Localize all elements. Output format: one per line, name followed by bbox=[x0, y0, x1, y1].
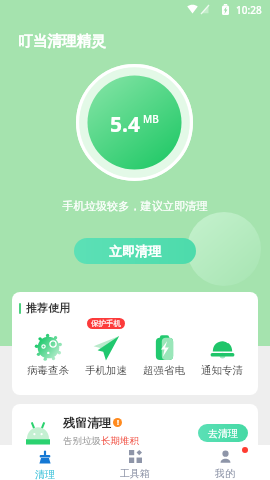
staticText: 告别垃圾 bbox=[63, 435, 101, 447]
staticText: 残留清理 bbox=[63, 415, 111, 430]
staticText: 我的 bbox=[215, 467, 235, 480]
staticText: MB bbox=[143, 112, 159, 126]
button[interactable]: Toolbox bbox=[90, 445, 180, 480]
staticText: 清理 bbox=[35, 468, 55, 480]
staticText: 通知专清 bbox=[201, 364, 243, 377]
button[interactable]: 手机加速 bbox=[77, 334, 135, 382]
staticText: 手机垃圾较多，建议立即清理 bbox=[0, 199, 270, 213]
staticText: 去清理 bbox=[208, 427, 238, 440]
staticText: 病毒查杀 bbox=[27, 364, 69, 377]
staticText: 叮当清理精灵 bbox=[18, 32, 106, 50]
staticText: 超强省电 bbox=[143, 364, 185, 377]
staticText: 立即清理 bbox=[109, 243, 161, 259]
staticText: ! bbox=[117, 418, 119, 427]
button[interactable]: 超强省电 bbox=[135, 334, 193, 382]
button[interactable]: 病毒查杀 bbox=[19, 334, 77, 382]
staticText: 长期堆积 bbox=[101, 435, 139, 447]
button[interactable]: 通知专清 bbox=[193, 334, 251, 382]
button[interactable]: 去清理 bbox=[198, 424, 248, 442]
staticText: 推荐使用 bbox=[26, 301, 70, 315]
staticText: 保护手机 bbox=[91, 319, 121, 328]
button[interactable]: Mine bbox=[180, 445, 270, 480]
button[interactable]: Clean bbox=[0, 445, 90, 480]
button[interactable]: 立即清理 bbox=[74, 238, 196, 264]
staticText: 5.4 bbox=[110, 110, 140, 139]
staticText: 手机加速 bbox=[85, 364, 127, 377]
staticText: 工具箱 bbox=[120, 467, 150, 480]
staticText: 10:28 bbox=[236, 3, 262, 17]
